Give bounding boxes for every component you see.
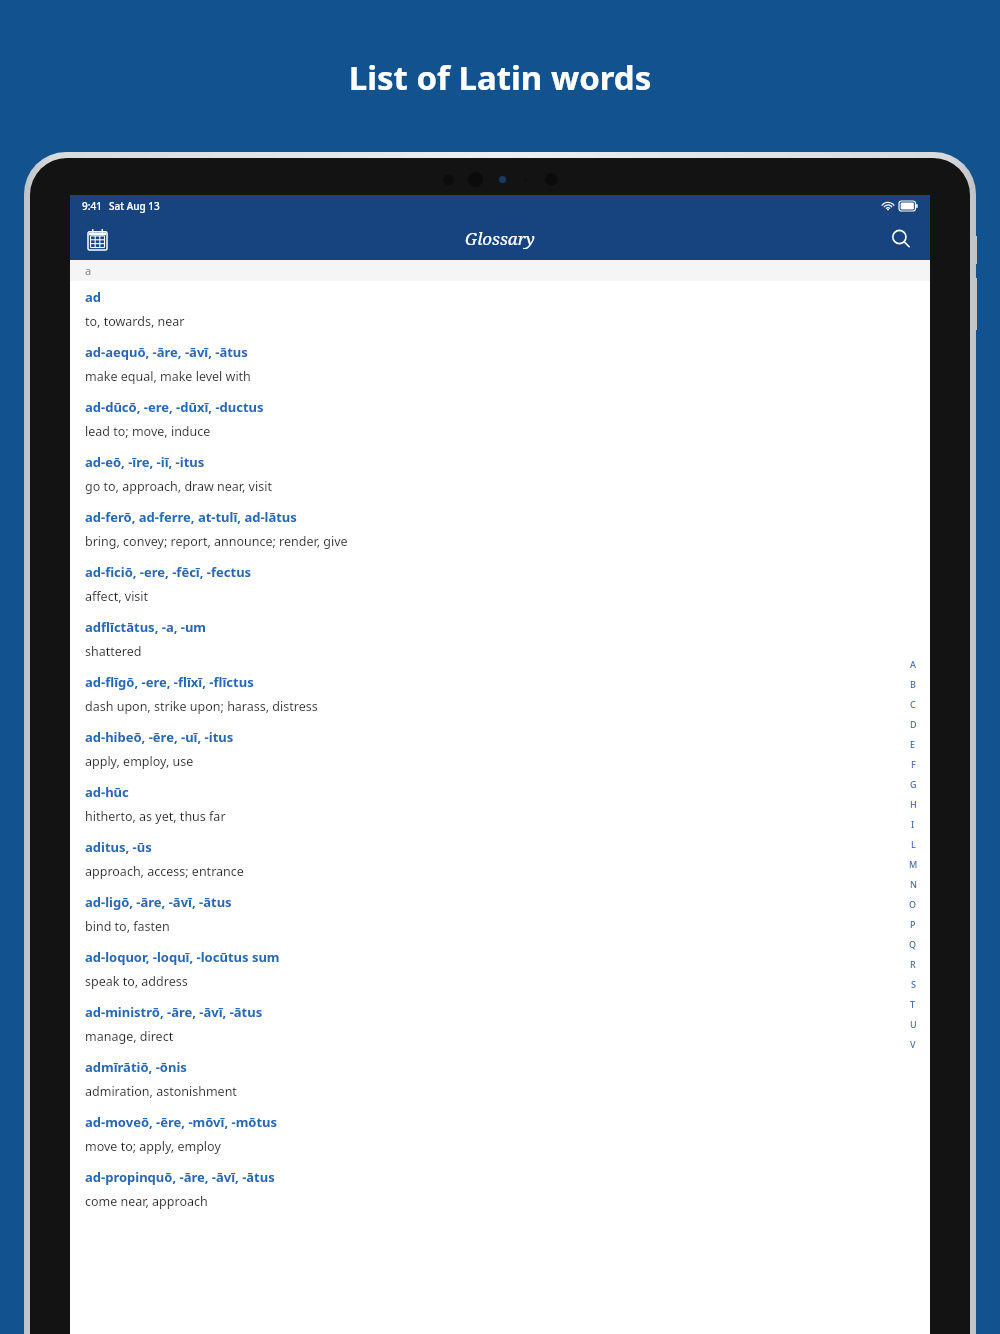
staticText: R — [910, 958, 916, 970]
button[interactable]: aditus, -ūs — [70, 831, 930, 886]
staticText: M — [909, 858, 918, 870]
button[interactable]: ad-ficiō, -ere, -fēcī, -fectus — [70, 556, 930, 611]
staticText: affect, visit — [85, 588, 149, 605]
button[interactable]: ad-eō, -īre, -iī, -itus — [70, 446, 930, 501]
staticText: dash upon, strike upon; harass, distress — [85, 698, 318, 715]
staticText: ad-ligō, -āre, -āvī, -ātus — [85, 893, 232, 911]
staticText: ad-eō, -īre, -iī, -itus — [85, 453, 205, 471]
staticText: T — [910, 998, 916, 1010]
staticText: to, towards, near — [85, 313, 185, 330]
staticText: shattered — [85, 643, 142, 660]
staticText: go to, approach, draw near, visit — [85, 478, 272, 495]
button[interactable]: ad-dūcō, -ere, -dūxī, -ductus — [70, 391, 930, 446]
staticText: I — [911, 818, 915, 830]
staticText: S — [911, 978, 916, 990]
staticText: manage, direct — [85, 1028, 174, 1045]
button[interactable]: ad-moveō, -ēre, -mōvī, -mōtus — [70, 1106, 930, 1161]
staticText: ad-ficiō, -ere, -fēcī, -fectus — [85, 563, 252, 581]
staticText: hitherto, as yet, thus far — [85, 808, 226, 825]
staticText: Q — [909, 938, 917, 950]
staticText: approach, access; entrance — [85, 863, 244, 880]
staticText: ad-flīgō, -ere, -flīxī, -flīctus — [85, 673, 254, 691]
staticText: L — [911, 838, 916, 850]
staticText: a — [85, 263, 92, 278]
staticText: admīrātiō, -ōnis — [85, 1058, 187, 1076]
staticText: move to; apply, employ — [85, 1138, 221, 1155]
staticText: D — [910, 718, 917, 730]
staticText: bind to, fasten — [85, 918, 170, 935]
staticText: bring, convey; report, announce; render,… — [85, 533, 348, 550]
button[interactable]: adflīctātus, -a, -um — [70, 611, 930, 666]
staticText: ad-aequō, -āre, -āvī, -ātus — [85, 343, 248, 361]
button[interactable]: Search — [882, 220, 920, 258]
button[interactable]: ad-propinquō, -āre, -āvī, -ātus — [70, 1161, 930, 1216]
staticText: aditus, -ūs — [85, 838, 152, 856]
staticText: E — [910, 738, 916, 750]
button[interactable]: admīrātiō, -ōnis — [70, 1051, 930, 1106]
staticText: 9:41 — [82, 199, 102, 213]
staticText: ad-hibeō, -ēre, -uī, -itus — [85, 728, 234, 746]
button[interactable]: ad-aequō, -āre, -āvī, -ātus — [70, 336, 930, 391]
staticText: Glossary — [465, 227, 535, 250]
staticText: ad-loquor, -loquī, -locūtus sum — [85, 948, 280, 966]
staticText: ad — [85, 288, 102, 306]
staticText: ad-ferō, ad-ferre, at-tulī, ad-lātus — [85, 508, 297, 526]
button[interactable]: ad-ferō, ad-ferre, at-tulī, ad-lātus — [70, 501, 930, 556]
staticText: B — [910, 678, 916, 690]
staticText: make equal, make level with — [85, 368, 251, 385]
staticText: ad-hūc — [85, 783, 129, 801]
staticText: ad-dūcō, -ere, -dūxī, -ductus — [85, 398, 264, 416]
button[interactable]: ad-ministrō, -āre, -āvī, -ātus — [70, 996, 930, 1051]
staticText: O — [909, 898, 917, 910]
button[interactable]: ad — [70, 281, 930, 336]
staticText: C — [910, 698, 916, 710]
button[interactable]: ad-hibeō, -ēre, -uī, -itus — [70, 721, 930, 776]
staticText: P — [910, 918, 916, 930]
staticText: ad-ministrō, -āre, -āvī, -ātus — [85, 1003, 263, 1021]
staticText: U — [910, 1018, 917, 1030]
staticText: ad-propinquō, -āre, -āvī, -ātus — [85, 1168, 275, 1186]
button[interactable]: ad-flīgō, -ere, -flīxī, -flīctus — [70, 666, 930, 721]
staticText: G — [910, 778, 917, 790]
staticText: adflīctātus, -a, -um — [85, 618, 207, 636]
staticText: come near, approach — [85, 1193, 208, 1210]
staticText: ad-moveō, -ēre, -mōvī, -mōtus — [85, 1113, 278, 1131]
button[interactable]: Alphabet index — [906, 654, 920, 1054]
staticText: lead to; move, induce — [85, 423, 211, 440]
staticText: apply, employ, use — [85, 753, 194, 770]
button[interactable]: ad-ligō, -āre, -āvī, -ātus — [70, 886, 930, 941]
button[interactable]: ad-hūc — [70, 776, 930, 831]
staticText: H — [910, 798, 917, 810]
button[interactable]: ad-loquor, -loquī, -locūtus sum — [70, 941, 930, 996]
staticText: List of Latin words — [0, 55, 1000, 100]
button[interactable]: Calendar — [78, 220, 116, 258]
staticText: V — [910, 1038, 916, 1050]
staticText: F — [911, 758, 916, 770]
staticText: Sat Aug 13 — [109, 199, 160, 213]
staticText: N — [910, 878, 917, 890]
staticText: speak to, address — [85, 973, 188, 990]
staticText: admiration, astonishment — [85, 1083, 237, 1100]
staticText: A — [910, 658, 916, 670]
